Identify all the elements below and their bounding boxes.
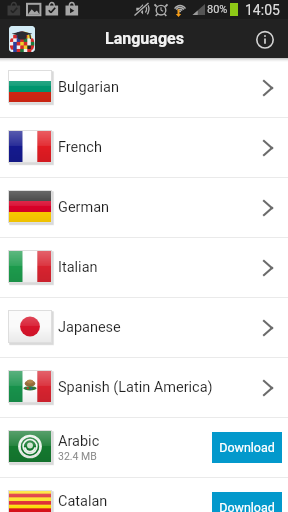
button[interactable]: Arabic bbox=[0, 418, 288, 477]
button[interactable]: Spanish (Latin America) bbox=[0, 358, 288, 417]
staticText: Bulgarian bbox=[58, 79, 119, 96]
staticText: Languages bbox=[105, 29, 184, 48]
staticText: Arabic bbox=[58, 433, 100, 450]
button[interactable]: Italian bbox=[0, 238, 288, 297]
button[interactable]: Catalan bbox=[0, 478, 288, 512]
button[interactable]: Download bbox=[212, 432, 282, 463]
button[interactable]: Open Italian bbox=[256, 253, 282, 283]
button[interactable]: Download bbox=[212, 492, 282, 512]
staticText: German bbox=[58, 199, 110, 216]
button[interactable]: German bbox=[0, 178, 288, 237]
button[interactable]: Open Spanish (Latin America) bbox=[256, 373, 282, 403]
staticText: Japanese bbox=[58, 319, 121, 336]
button[interactable]: Info bbox=[250, 24, 280, 54]
button[interactable]: Japanese bbox=[0, 298, 288, 357]
button[interactable]: French bbox=[0, 118, 288, 177]
staticText: Download bbox=[219, 500, 275, 512]
staticText: Italian bbox=[58, 259, 98, 276]
staticText: 32.4 MB bbox=[58, 450, 97, 462]
button[interactable]: Bulgarian bbox=[0, 58, 288, 117]
staticText: French bbox=[58, 139, 102, 156]
staticText: Download bbox=[219, 440, 275, 455]
button[interactable]: Open German bbox=[256, 193, 282, 223]
staticText: 80% bbox=[207, 3, 228, 16]
staticText: Catalan bbox=[58, 493, 108, 510]
staticText: 14:05 bbox=[245, 2, 280, 18]
staticText: Spanish (Latin America) bbox=[58, 379, 213, 396]
button[interactable]: Open French bbox=[256, 133, 282, 163]
button[interactable]: Open Bulgarian bbox=[256, 73, 282, 103]
button[interactable]: Open Japanese bbox=[256, 313, 282, 343]
